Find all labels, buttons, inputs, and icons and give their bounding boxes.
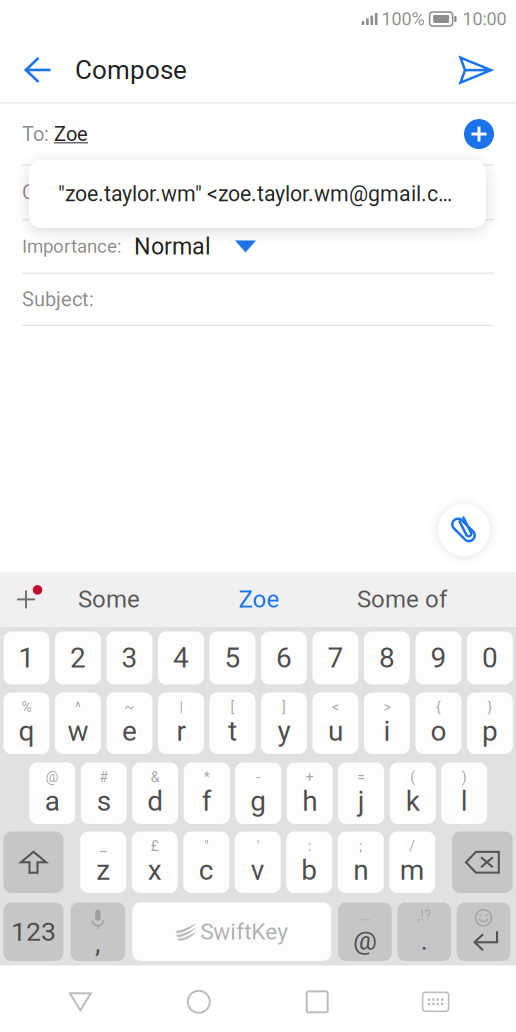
staticText: Importance: (22, 235, 122, 257)
staticText: _ (100, 838, 106, 854)
button[interactable]: ] (261, 692, 307, 754)
button[interactable]: [ (209, 692, 255, 754)
staticText: Some (78, 585, 140, 613)
staticText: e (122, 715, 137, 748)
button[interactable]: More options (0, 572, 52, 627)
button[interactable]: Recent apps (279, 972, 355, 1032)
button[interactable]: 9 (415, 631, 461, 684)
button[interactable]: ~ (106, 692, 152, 754)
staticText: { (436, 699, 441, 715)
button[interactable]: { (415, 692, 461, 754)
button[interactable]: | (158, 692, 204, 754)
staticText: l (461, 785, 468, 818)
button[interactable]: 8 (364, 631, 410, 684)
button[interactable]: … (338, 902, 392, 961)
staticText: 7 (327, 642, 343, 674)
button[interactable]: ' (235, 831, 281, 893)
staticText: } (487, 699, 492, 715)
button[interactable]: < (312, 692, 358, 754)
button[interactable]: # (81, 762, 127, 824)
button[interactable]: ,!? (397, 902, 451, 961)
staticText: ,!? (417, 907, 431, 924)
staticText: Subject: (22, 288, 94, 311)
button[interactable]: 1 (3, 631, 49, 684)
staticText: 100% (382, 8, 425, 30)
staticText: < (332, 699, 339, 715)
button[interactable]: Send (445, 38, 507, 102)
button[interactable]: Zoe (194, 572, 324, 627)
staticText: d (147, 785, 163, 818)
staticText: n (353, 854, 368, 887)
staticText: ; (359, 838, 362, 854)
button[interactable]: 7 (312, 631, 358, 684)
staticText: * (204, 769, 210, 785)
staticText: 0 (482, 642, 498, 674)
button[interactable]: 123 (3, 902, 63, 961)
button[interactable]: > (364, 692, 410, 754)
button[interactable]: / (389, 831, 435, 893)
staticText: w (67, 715, 88, 748)
staticText: k (406, 785, 420, 818)
button[interactable]: : (286, 831, 332, 893)
button[interactable]: & (132, 762, 178, 824)
button[interactable]: Back (7, 38, 69, 102)
staticText: 1 (18, 642, 34, 674)
button[interactable]: Back (42, 972, 118, 1032)
button[interactable]: - (235, 762, 281, 824)
button[interactable]: } (467, 692, 513, 754)
button[interactable]: Enter (457, 902, 510, 961)
staticText: h (302, 785, 317, 818)
staticText: : (308, 838, 311, 854)
button[interactable]: Backspace (452, 831, 513, 893)
staticText: Normal (134, 233, 211, 260)
button[interactable]: Some of (337, 572, 467, 627)
staticText: ) (462, 769, 467, 785)
button[interactable]: Hide keyboard (398, 972, 474, 1032)
button[interactable]: 4 (158, 631, 204, 684)
button[interactable]: Attach file (438, 504, 490, 556)
button[interactable]: 0 (467, 631, 513, 684)
staticText: 3 (121, 642, 137, 674)
staticText: £ (151, 838, 159, 854)
button[interactable]: ) (441, 762, 487, 824)
staticText: i (383, 715, 390, 748)
button[interactable]: % (3, 692, 49, 754)
button[interactable]: _ (80, 831, 126, 893)
button[interactable]: Voice input (70, 902, 125, 961)
button[interactable]: Space (132, 902, 331, 961)
button[interactable]: ; (338, 831, 384, 893)
staticText: [ (230, 699, 234, 715)
staticText: ' (257, 838, 259, 854)
staticText: + (306, 769, 314, 785)
staticText: o (430, 715, 446, 748)
button[interactable]: = (338, 762, 384, 824)
staticText: 123 (11, 916, 56, 947)
staticText: 5 (224, 642, 240, 674)
staticText: a (45, 785, 60, 818)
button[interactable]: + (287, 762, 333, 824)
staticText: " (204, 838, 208, 854)
button[interactable]: 2 (55, 631, 101, 684)
button[interactable]: * (184, 762, 230, 824)
staticText: c (199, 854, 214, 887)
staticText: ~ (124, 699, 134, 715)
staticText: > (383, 699, 390, 715)
button[interactable]: Shift (3, 831, 63, 893)
button[interactable]: ^ (55, 692, 101, 754)
button[interactable]: Home (161, 972, 237, 1032)
button[interactable]: " (183, 831, 229, 893)
button[interactable]: Some (44, 572, 174, 627)
button[interactable]: @ (29, 762, 75, 824)
staticText: / (409, 838, 415, 854)
staticText: Cc: (22, 181, 50, 204)
button[interactable]: £ (132, 831, 178, 893)
button[interactable]: 6 (261, 631, 307, 684)
staticText: Zoe (54, 122, 88, 146)
staticText: % (21, 699, 31, 715)
staticText: Compose (75, 55, 187, 85)
staticText: Some of (357, 585, 447, 613)
button[interactable]: 3 (106, 631, 152, 684)
button[interactable]: Add recipient (464, 119, 494, 149)
button[interactable]: ( (390, 762, 436, 824)
button[interactable]: 5 (209, 631, 255, 684)
